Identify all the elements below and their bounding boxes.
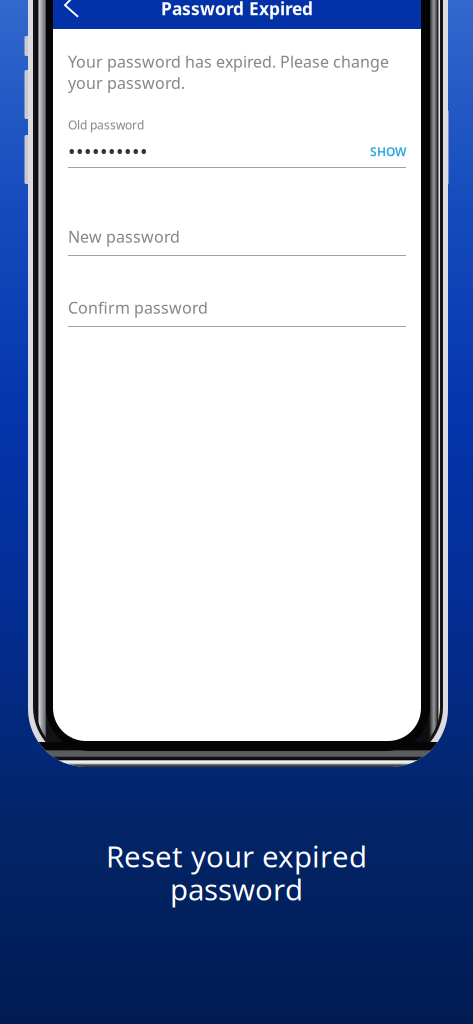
staticText: Reset your expired [106, 836, 367, 875]
button[interactable]: Back [53, 0, 89, 29]
staticText: SHOW [370, 143, 406, 159]
staticText: Confirm password [68, 297, 208, 318]
staticText: •••••••••• [68, 138, 148, 165]
button[interactable]: SHOW [358, 143, 406, 160]
staticText: password [170, 869, 303, 908]
staticText: New password [68, 226, 180, 247]
staticText: Password Expired [161, 0, 313, 20]
staticText: Old password [68, 117, 144, 133]
staticText: Your password has expired. Please change… [68, 51, 389, 93]
